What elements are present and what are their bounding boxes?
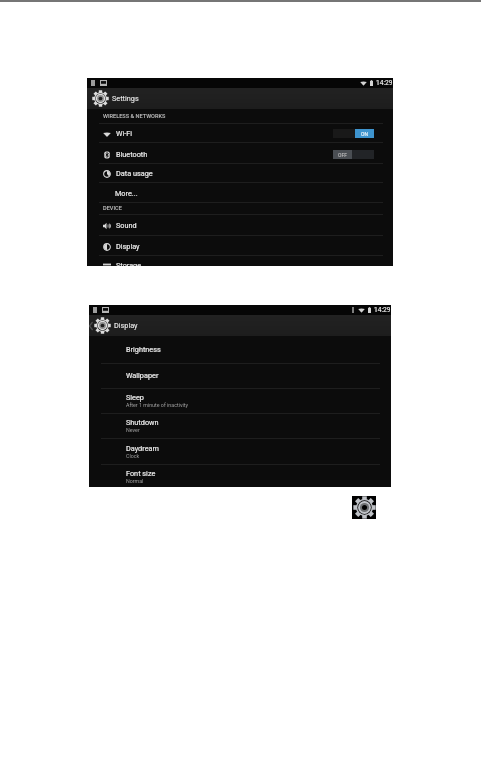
button[interactable]: Shutdown [89, 413, 391, 439]
staticText: Font size [126, 469, 156, 478]
staticText: 14:29 [374, 306, 391, 314]
staticText: ON [361, 131, 369, 137]
button[interactable]: Wi-Fi [87, 123, 393, 143]
staticText: Sound [116, 221, 137, 230]
button[interactable]: Settings [87, 88, 393, 109]
button[interactable]: Sound [87, 215, 393, 236]
staticText: Display [116, 242, 140, 251]
staticText: Sleep [126, 393, 144, 402]
staticText: More... [115, 189, 138, 198]
staticText: Storage [116, 261, 142, 266]
staticText: Brightness [126, 345, 161, 354]
button[interactable]: Settings [352, 496, 376, 519]
button[interactable]: Data usage [87, 163, 393, 183]
staticText: Shutdown [126, 418, 159, 427]
staticText: Normal [126, 478, 144, 484]
staticText: Wi-Fi [116, 129, 133, 138]
staticText: Data usage [116, 169, 153, 178]
button[interactable]: Display [87, 236, 393, 256]
button[interactable]: Daydream [89, 439, 391, 465]
staticText: Settings [112, 94, 139, 103]
button[interactable]: Storage [87, 256, 393, 266]
staticText: Wallpaper [126, 371, 159, 380]
staticText: Never [126, 427, 140, 433]
button[interactable]: Sleep [89, 389, 391, 414]
staticText: Bluetooth [116, 150, 148, 159]
button[interactable]: More... [87, 183, 393, 203]
button[interactable]: Brightness [89, 336, 391, 364]
staticText: 14:29 [376, 79, 393, 87]
button[interactable]: Display [89, 315, 391, 336]
button[interactable]: Font size [89, 465, 391, 487]
staticText: Clock [126, 453, 140, 459]
staticText: Daydream [126, 444, 159, 453]
staticText: Display [114, 321, 138, 330]
staticText: OFF [338, 152, 347, 158]
staticText: After 1 minute of inactivity [126, 402, 189, 408]
button[interactable]: Wallpaper [89, 363, 391, 389]
staticText: DEVICE [103, 205, 122, 212]
button[interactable]: Bluetooth [87, 144, 393, 164]
staticText: WIRELESS & NETWORKS [103, 113, 166, 120]
